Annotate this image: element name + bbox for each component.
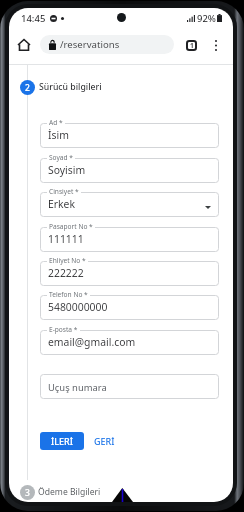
button[interactable]: Sürücü bilgileri [39,81,102,93]
button[interactable] [40,158,219,183]
staticText: 92% [197,12,216,25]
button[interactable] [40,227,219,252]
staticText: İsim [48,128,69,142]
staticText: 3 [25,487,30,499]
staticText: Soyad * [49,153,73,162]
button[interactable]: Tabs [182,36,200,54]
staticText: Ehliyet No * [49,256,86,265]
staticText: /reservations [60,38,120,51]
button[interactable] [40,295,219,320]
staticText: 111111 [48,232,84,246]
button[interactable] [40,123,219,148]
button[interactable]: İLERİ [40,432,84,450]
staticText: Sürücü bilgileri [39,81,102,93]
button[interactable]: 2 [20,80,35,95]
staticText: Uçuş numara [48,381,107,394]
button[interactable]: Home [15,36,33,54]
button[interactable] [40,261,219,286]
staticText: Pasaport No * [49,222,93,231]
staticText: email@gmail.com [48,335,136,349]
staticText: E-posta * [49,325,78,334]
button[interactable] [40,192,219,217]
staticText: 1 [190,41,194,50]
staticText: 222222 [48,266,84,280]
staticText: İLERİ [51,435,73,447]
button[interactable] [40,374,219,399]
staticText: Soyisim [48,163,86,177]
staticText: 14:45 [21,12,46,25]
button[interactable] [40,330,219,355]
staticText: Erkek [48,197,76,211]
staticText: 2 [25,82,30,94]
staticText: Ödeme Bilgileri [38,486,101,498]
staticText: Ad * [49,118,63,127]
button[interactable]: 3 [20,485,35,500]
staticText: GERİ [94,435,115,447]
button[interactable]: Ödeme Bilgileri [38,486,101,498]
staticText: 5480000000 [48,300,108,314]
staticText: Telefon No * [49,290,88,299]
staticText: Cinsiyet * [49,187,79,196]
button[interactable]: GERİ [90,432,119,450]
button[interactable]: /reservations [40,35,174,54]
button[interactable]: More options [208,37,224,53]
